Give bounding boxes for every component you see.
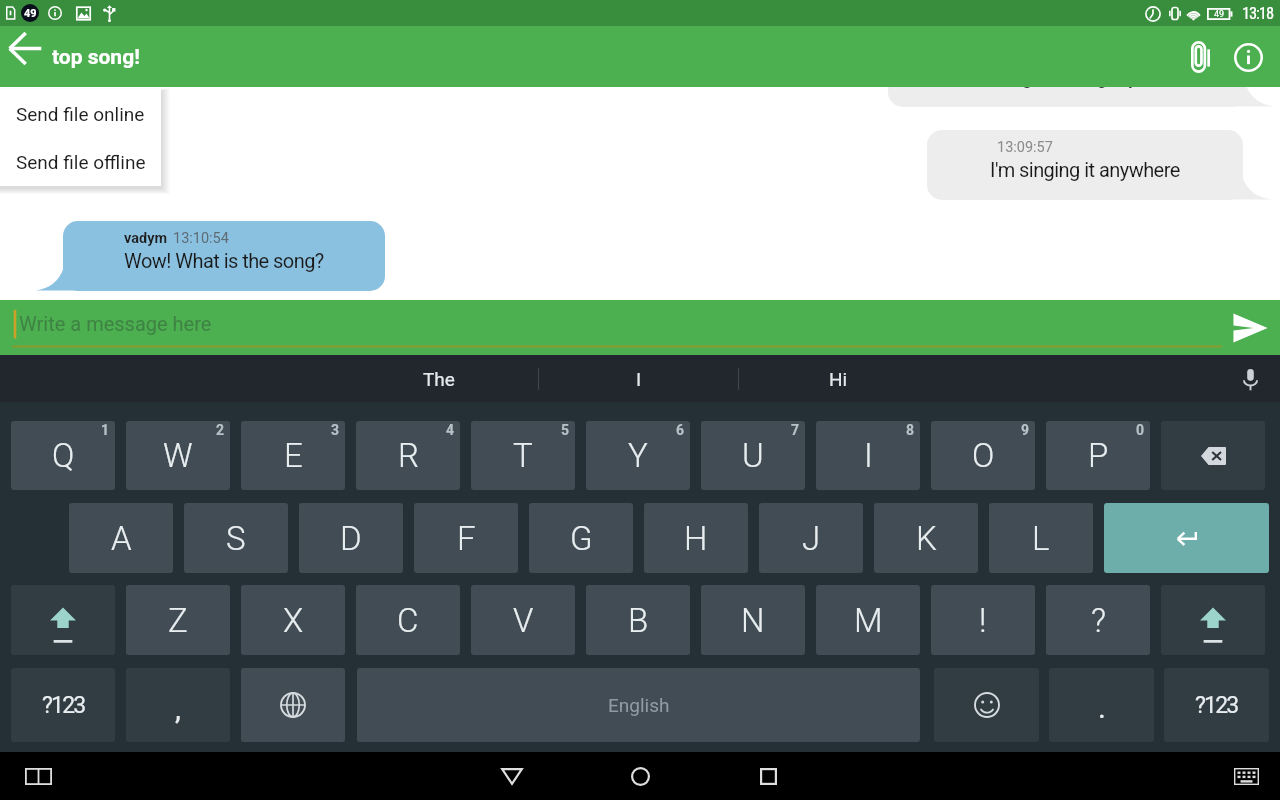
button[interactable]: D (299, 503, 403, 573)
staticText: W (163, 436, 193, 475)
button[interactable]: Home (608, 752, 672, 800)
staticText: ?123 (42, 692, 85, 719)
button[interactable]: ?123 (11, 668, 115, 742)
button[interactable]: , (126, 668, 230, 742)
button[interactable]: H (644, 503, 748, 573)
staticText: vadym (124, 230, 168, 247)
button[interactable]: I (816, 421, 920, 490)
staticText: . (1098, 690, 1106, 725)
staticText: ? (1091, 601, 1106, 640)
button[interactable]: Split screen (20, 758, 56, 794)
staticText: L (1032, 519, 1050, 558)
staticText: N (741, 601, 765, 640)
button[interactable]: C (356, 585, 460, 655)
button[interactable]: Q (11, 421, 115, 490)
button[interactable]: U (701, 421, 805, 490)
button[interactable]: Z (126, 585, 230, 655)
button[interactable]: Send file online (0, 89, 161, 137)
staticText: 49 (1214, 9, 1225, 20)
staticText: , (175, 691, 181, 726)
button[interactable]: ? (1046, 585, 1150, 655)
button[interactable]: Emoji (934, 668, 1039, 742)
button[interactable]: Recents (736, 752, 800, 800)
button[interactable]: Change language (241, 668, 345, 742)
button[interactable]: . (1049, 668, 1154, 742)
button[interactable]: Hide keyboard (1228, 758, 1264, 794)
button[interactable]: Send (1220, 300, 1280, 355)
button[interactable]: Send file offline (0, 137, 161, 185)
staticText: ! (979, 601, 987, 640)
button[interactable]: X (241, 585, 345, 655)
button[interactable]: ?123 (1164, 668, 1269, 742)
staticText: 7 (791, 422, 800, 438)
button[interactable]: Attach file (1176, 33, 1224, 81)
button[interactable]: T (471, 421, 575, 490)
staticText: O (972, 436, 995, 475)
button[interactable]: M (816, 585, 920, 655)
staticText: ?123 (1195, 692, 1238, 719)
button[interactable]: The (339, 355, 538, 402)
button[interactable]: J (759, 503, 863, 573)
staticText: T (513, 436, 533, 475)
staticText: P (1088, 436, 1109, 475)
staticText: I'm singing it anywhere (990, 158, 1180, 181)
staticText: 13:18 (1242, 4, 1273, 23)
staticText: U (742, 436, 764, 475)
button[interactable]: B (586, 585, 690, 655)
staticText: 8 (906, 422, 915, 438)
staticText: The (423, 368, 455, 390)
staticText: M (854, 601, 883, 640)
button[interactable]: R (356, 421, 460, 490)
staticText: J (802, 519, 821, 558)
button[interactable]: Y (586, 421, 690, 490)
staticText: 13:09:57 (997, 139, 1053, 156)
button[interactable]: S (184, 503, 288, 573)
button[interactable]: ! (931, 585, 1035, 655)
staticText: Send file online (16, 103, 145, 125)
button[interactable]: V (471, 585, 575, 655)
staticText: I (864, 436, 873, 475)
button[interactable]: Back (480, 752, 544, 800)
staticText: G (570, 519, 593, 558)
button[interactable]: I (539, 355, 738, 402)
staticText: C (397, 601, 419, 640)
staticText: Hi (829, 368, 848, 390)
staticText: E (284, 436, 303, 475)
staticText: Q (52, 436, 75, 475)
staticText: This song is eating my brain (950, 87, 1184, 88)
staticText: Write a message here (19, 312, 212, 335)
button[interactable]: Back (0, 26, 50, 71)
button[interactable]: Shift (11, 585, 115, 655)
button[interactable]: A (69, 503, 173, 573)
staticText: Z (168, 601, 188, 640)
button[interactable]: Hi (739, 355, 938, 402)
staticText: Send file offline (16, 151, 146, 173)
button[interactable]: Shift (1161, 585, 1265, 655)
staticText: 0 (1136, 422, 1145, 438)
staticText: K (916, 519, 937, 558)
staticText: Wow! What is the song? (124, 249, 324, 272)
button[interactable]: Backspace (1161, 421, 1265, 490)
button[interactable]: G (529, 503, 633, 573)
button[interactable]: Info (1220, 29, 1276, 85)
staticText: 4 (446, 422, 455, 438)
staticText: 1 (101, 422, 110, 438)
staticText: Y (628, 436, 648, 475)
button[interactable]: L (989, 503, 1093, 573)
button[interactable]: O (931, 421, 1035, 490)
staticText: A (111, 519, 132, 558)
staticText: 3 (331, 422, 340, 438)
button[interactable]: P (1046, 421, 1150, 490)
button[interactable]: Enter (1104, 503, 1269, 573)
button[interactable]: F (414, 503, 518, 573)
button[interactable]: Voice input (1230, 359, 1270, 399)
staticText: I (636, 368, 642, 390)
button[interactable]: English (357, 668, 920, 742)
staticText: 2 (216, 422, 225, 438)
button[interactable]: W (126, 421, 230, 490)
button[interactable]: E (241, 421, 345, 490)
button[interactable]: N (701, 585, 805, 655)
staticText: D (340, 519, 362, 558)
button[interactable]: K (874, 503, 978, 573)
staticText: S (226, 519, 246, 558)
